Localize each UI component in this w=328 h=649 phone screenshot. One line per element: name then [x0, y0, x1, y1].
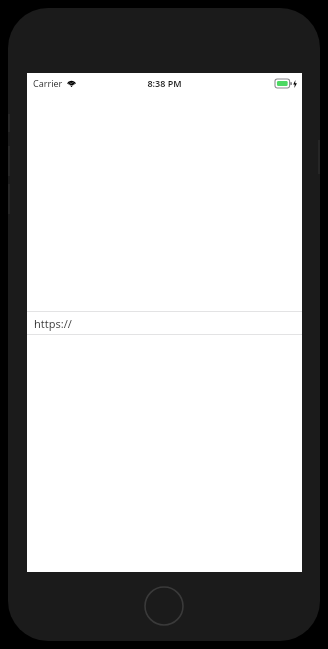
staticText: Carrier	[33, 77, 63, 89]
staticText: https://	[34, 316, 72, 331]
staticText: 8:38 PM	[147, 77, 182, 89]
button[interactable]: Home	[144, 586, 184, 626]
button[interactable]: https://	[27, 312, 302, 334]
